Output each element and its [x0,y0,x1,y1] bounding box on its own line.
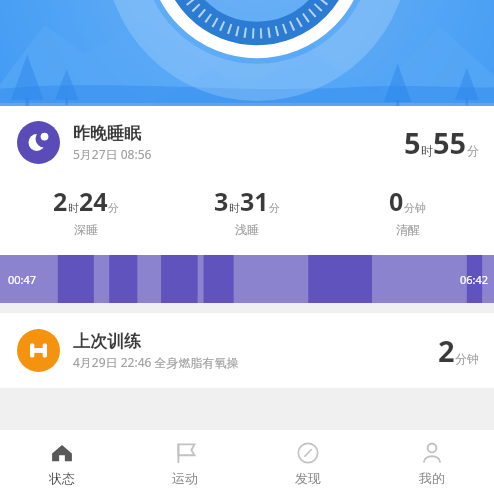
staticText: 55 [433,123,467,162]
button[interactable]: 发现 [246,430,370,498]
staticText: 06:42 [460,272,489,287]
staticText: 上次训练 [73,331,141,352]
staticText: 清醒 [396,222,420,237]
staticText: 深睡 [74,222,98,237]
staticText: 昨晚睡眠 [73,123,141,144]
staticText: 4月29日 22:46 全身燃脂有氧操 [73,354,239,370]
staticText: 5月27日 08:56 [73,146,152,162]
staticText: 2 [53,184,68,218]
staticText: 分 [108,201,119,215]
staticText: 00:47 [8,272,37,287]
staticText: 时 [229,201,240,215]
staticText: 2 [438,331,455,370]
staticText: 我的 [419,470,445,486]
staticText: 分 [269,201,280,215]
staticText: 浅睡 [235,222,259,237]
staticText: 3 [214,184,229,218]
staticText: 分钟 [455,351,479,366]
staticText: 5 [404,123,421,162]
button[interactable]: 我的 [370,430,494,498]
staticText: 分 [467,143,479,158]
staticText: 31 [240,184,269,218]
staticText: 24 [79,184,108,218]
staticText: 时 [68,201,79,215]
staticText: 运动 [172,470,198,486]
button[interactable]: 运动 [123,430,246,498]
staticText: 时 [421,143,433,158]
button[interactable]: 上次训练 [0,313,494,388]
staticText: 状态 [49,470,75,486]
button[interactable]: 昨晚睡眠 [0,106,494,303]
staticText: 分钟 [404,201,426,215]
staticText: 0 [389,184,404,218]
button[interactable]: 状态 [0,430,123,498]
staticText: 发现 [295,470,321,486]
